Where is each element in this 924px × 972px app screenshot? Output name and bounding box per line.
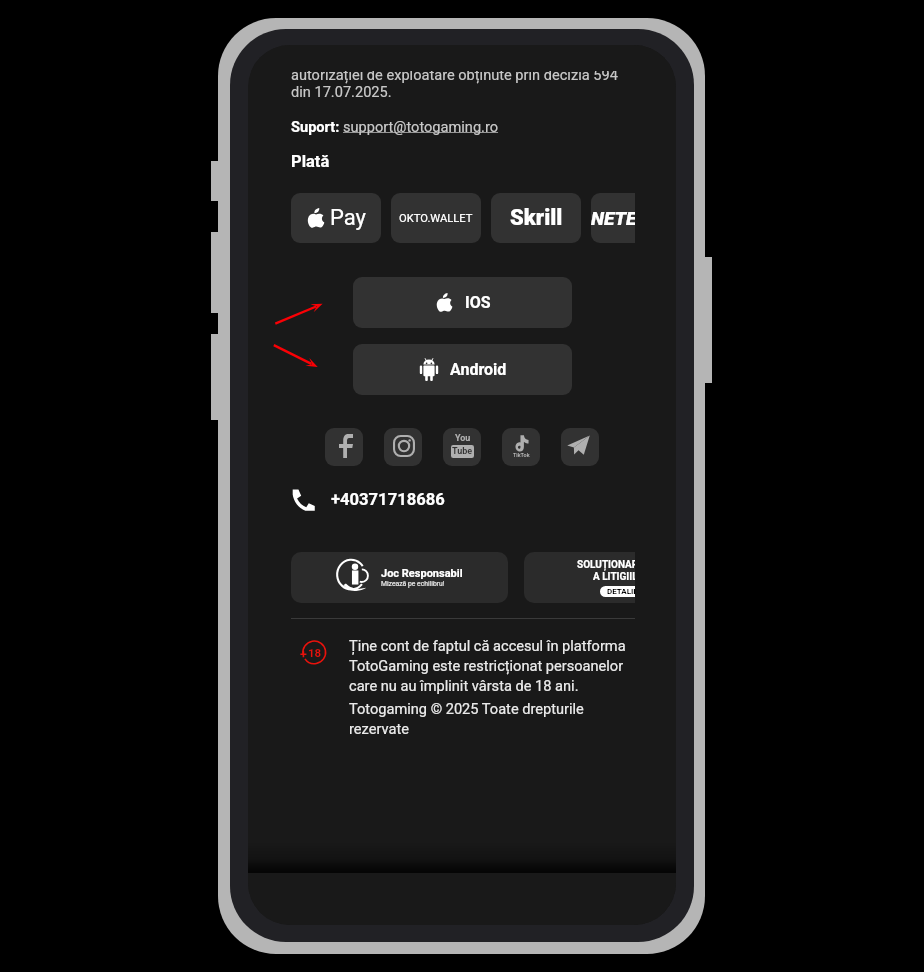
button[interactable]: OKTO.WALLET <box>391 193 481 243</box>
button[interactable]: TikTok <box>502 428 540 466</box>
staticText: +40371718686 <box>331 490 445 509</box>
button[interactable]: Instagram <box>384 428 422 466</box>
button[interactable]: Facebook <box>325 428 363 466</box>
staticText: Skrill <box>510 205 563 231</box>
button[interactable]: +40371718686 <box>292 488 445 511</box>
staticText: You <box>455 433 471 444</box>
staticText: Totogaming © 2025 Toate drepturile rezer… <box>349 700 634 737</box>
button[interactable]: SOLUȚIONAREA AL <box>524 552 676 603</box>
button[interactable]: Telegram <box>561 428 599 466</box>
staticText: OKTO.WALLET <box>399 212 473 225</box>
staticText: 18 <box>308 646 322 659</box>
button[interactable]: NETELLER <box>591 193 676 243</box>
button[interactable]: Android <box>353 344 572 395</box>
button[interactable]: Suport: support@totogaming.ro <box>291 118 499 135</box>
staticText: Mizează pe echilibru! <box>381 580 445 588</box>
staticText: Ține cont de faptul că accesul în platfo… <box>349 637 634 694</box>
button[interactable]: YouTube <box>443 428 481 466</box>
staticText: SOLUȚIONAREA AL <box>577 559 666 571</box>
button[interactable]: Skrill <box>491 193 581 243</box>
staticText: Tube <box>452 446 473 457</box>
button[interactable]: Pay <box>291 193 381 243</box>
staticText: NETELLER <box>591 207 676 229</box>
staticText: Joc Responsabil <box>381 567 463 580</box>
staticText: Plată <box>291 152 330 171</box>
button[interactable]: IOS <box>353 277 572 328</box>
staticText: IOS <box>465 293 491 312</box>
staticText: DETALII <box>607 587 636 596</box>
staticText: Pay <box>330 205 366 231</box>
staticText: TikTok <box>513 452 530 458</box>
button[interactable]: Joc Responsabil <box>291 552 508 603</box>
staticText: A LITIGIILOR <box>593 571 651 583</box>
staticText: Android <box>450 360 507 379</box>
staticText: autorizației de exploatare obținute prin… <box>291 66 633 101</box>
